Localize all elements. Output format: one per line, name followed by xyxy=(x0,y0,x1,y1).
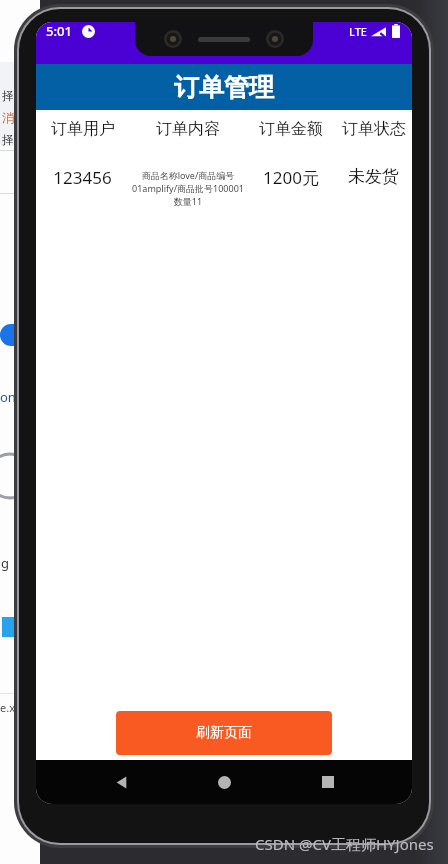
staticText: 商品名称love/商品编号01amplify/商品批号100001数量11 xyxy=(129,169,247,208)
staticText: 123456 xyxy=(53,166,112,189)
staticText: 订单用户 xyxy=(51,119,115,139)
staticText: 刷新页面 xyxy=(196,724,252,742)
button[interactable]: Recent apps xyxy=(309,763,347,801)
staticText: 订单状态 xyxy=(342,119,406,139)
staticText: 1200元 xyxy=(263,166,319,189)
button[interactable]: 订单用户 xyxy=(36,119,129,139)
button[interactable]: 订单金额 xyxy=(247,119,335,139)
staticText: 择 xyxy=(2,132,14,147)
button[interactable]: 订单内容 xyxy=(129,119,247,139)
staticText: 消 xyxy=(2,110,14,125)
button[interactable]: Back xyxy=(102,763,140,801)
staticText: 未发货 xyxy=(348,166,399,187)
button[interactable]: 订单状态 xyxy=(335,119,412,139)
staticText: ong xyxy=(0,388,24,406)
button[interactable]: 刷新页面 xyxy=(116,711,332,755)
staticText: LTE xyxy=(349,24,367,39)
button[interactable]: Home xyxy=(205,763,243,801)
staticText: 5:01 xyxy=(46,22,72,40)
staticText: CSDN @CV工程师HYJones xyxy=(255,834,434,854)
button[interactable]: 123456 xyxy=(36,166,412,218)
staticText: g xyxy=(1,554,9,572)
staticText: 订单内容 xyxy=(156,119,220,139)
staticText: e.x xyxy=(0,700,15,715)
staticText: 订单管理 xyxy=(174,72,274,103)
staticText: 择 xyxy=(2,88,14,103)
staticText: 订单金额 xyxy=(259,119,323,139)
